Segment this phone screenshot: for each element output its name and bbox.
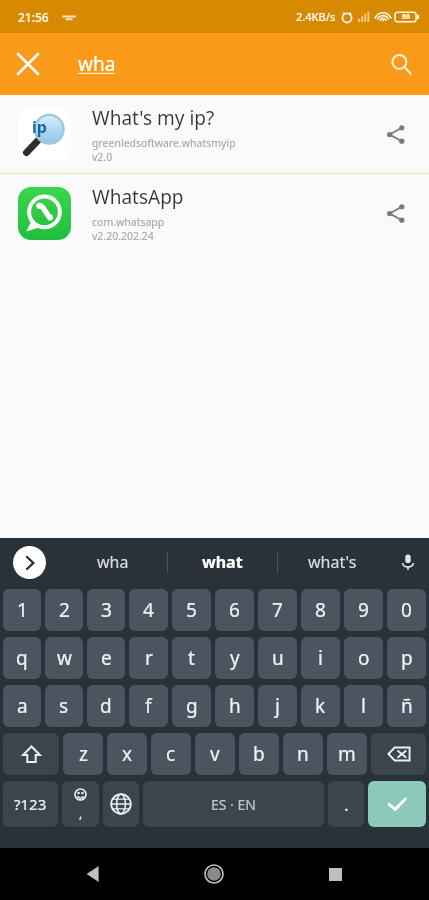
button[interactable]: Emoji and comma bbox=[62, 781, 99, 827]
staticText: 21:56 bbox=[18, 9, 49, 25]
button[interactable]: i bbox=[301, 637, 340, 679]
staticText: 6 bbox=[229, 597, 240, 623]
button[interactable]: 9 bbox=[344, 589, 383, 631]
staticText: q bbox=[16, 645, 28, 671]
button[interactable]: what's bbox=[278, 538, 387, 586]
button[interactable]: g bbox=[172, 685, 211, 727]
button[interactable]: ES · EN bbox=[143, 781, 324, 827]
button[interactable]: ñ bbox=[387, 685, 426, 727]
staticText: . bbox=[344, 793, 349, 816]
button[interactable]: Home bbox=[187, 848, 241, 900]
button[interactable]: Enter bbox=[368, 781, 426, 827]
button[interactable]: v bbox=[195, 733, 235, 775]
button[interactable]: 7 bbox=[258, 589, 297, 631]
staticText: com.whatsapp bbox=[92, 215, 165, 229]
staticText: 2.4KB/s bbox=[296, 9, 336, 24]
button[interactable]: Voice input bbox=[387, 538, 429, 586]
button[interactable]: 6 bbox=[215, 589, 254, 631]
button[interactable]: e bbox=[87, 637, 125, 679]
button[interactable]: x bbox=[107, 733, 147, 775]
staticText: i bbox=[318, 645, 323, 671]
button[interactable]: q bbox=[3, 637, 41, 679]
staticText: wha bbox=[78, 51, 116, 77]
staticText: d bbox=[100, 693, 112, 719]
staticText: g bbox=[186, 693, 198, 719]
staticText: what bbox=[202, 551, 243, 573]
staticText: y bbox=[230, 645, 240, 671]
staticText: s bbox=[59, 693, 69, 719]
staticText: n bbox=[297, 741, 309, 767]
button[interactable]: c bbox=[151, 733, 191, 775]
staticText: a bbox=[17, 693, 28, 719]
button[interactable]: t bbox=[172, 637, 211, 679]
button[interactable]: Change language bbox=[103, 781, 139, 827]
staticText: ñ bbox=[401, 693, 413, 719]
button[interactable]: 1 bbox=[3, 589, 41, 631]
button[interactable]: a bbox=[3, 685, 41, 727]
staticText: ip bbox=[32, 116, 47, 138]
staticText: 0 bbox=[401, 597, 412, 623]
staticText: greenledsoftware.whatsmyip bbox=[92, 136, 236, 150]
button[interactable]: Share bbox=[367, 106, 423, 162]
button[interactable]: Backspace bbox=[371, 733, 426, 775]
staticText: ?123 bbox=[14, 794, 47, 814]
button[interactable]: k bbox=[301, 685, 340, 727]
button[interactable]: n bbox=[283, 733, 323, 775]
button[interactable]: b bbox=[239, 733, 279, 775]
staticText: l bbox=[361, 693, 366, 719]
button[interactable]: u bbox=[258, 637, 297, 679]
staticText: ES · EN bbox=[211, 795, 256, 814]
button[interactable]: Expand toolbar bbox=[0, 538, 58, 586]
staticText: m bbox=[338, 741, 356, 767]
staticText: o bbox=[358, 645, 370, 671]
button[interactable]: . bbox=[328, 781, 364, 827]
button[interactable]: s bbox=[45, 685, 83, 727]
button[interactable]: Shift bbox=[3, 733, 59, 775]
button[interactable]: m bbox=[327, 733, 367, 775]
button[interactable]: l bbox=[344, 685, 383, 727]
staticText: f bbox=[145, 693, 152, 719]
button[interactable]: 8 bbox=[301, 589, 340, 631]
staticText: z bbox=[79, 741, 88, 767]
button[interactable]: wha bbox=[58, 538, 167, 586]
button[interactable]: Recent apps bbox=[308, 848, 362, 900]
button[interactable]: r bbox=[129, 637, 168, 679]
button[interactable]: p bbox=[387, 637, 426, 679]
staticText: 60 bbox=[402, 12, 411, 22]
staticText: , bbox=[79, 805, 83, 821]
button[interactable]: Close search bbox=[0, 36, 56, 92]
button[interactable]: Share bbox=[367, 185, 423, 241]
button[interactable]: h bbox=[215, 685, 254, 727]
staticText: What's my ip? bbox=[92, 105, 215, 131]
staticText: wha bbox=[97, 551, 129, 573]
button[interactable]: 3 bbox=[87, 589, 125, 631]
staticText: b bbox=[253, 741, 265, 767]
button[interactable]: z bbox=[63, 733, 103, 775]
staticText: 2 bbox=[59, 597, 70, 623]
button[interactable]: WhatsApp bbox=[0, 174, 429, 252]
button[interactable]: 4 bbox=[129, 589, 168, 631]
staticText: 4 bbox=[143, 597, 154, 623]
button[interactable]: w bbox=[45, 637, 83, 679]
button[interactable]: 0 bbox=[387, 589, 426, 631]
button[interactable]: y bbox=[215, 637, 254, 679]
staticText: e bbox=[101, 645, 112, 671]
staticText: c bbox=[166, 741, 176, 767]
button[interactable]: o bbox=[344, 637, 383, 679]
staticText: 7 bbox=[272, 597, 283, 623]
button[interactable]: 5 bbox=[172, 589, 211, 631]
button[interactable]: j bbox=[258, 685, 297, 727]
button[interactable]: what bbox=[168, 538, 277, 586]
button[interactable]: ip bbox=[0, 95, 429, 173]
staticText: WhatsApp bbox=[92, 184, 184, 210]
staticText: k bbox=[315, 693, 326, 719]
button[interactable]: d bbox=[87, 685, 125, 727]
button[interactable]: Search bbox=[373, 36, 429, 92]
button[interactable]: ?123 bbox=[3, 781, 58, 827]
button[interactable]: 2 bbox=[45, 589, 83, 631]
staticText: 9 bbox=[358, 597, 369, 623]
button[interactable]: f bbox=[129, 685, 168, 727]
staticText: 1 bbox=[17, 597, 28, 623]
button[interactable]: Back bbox=[66, 848, 120, 900]
staticText: 8 bbox=[315, 597, 326, 623]
